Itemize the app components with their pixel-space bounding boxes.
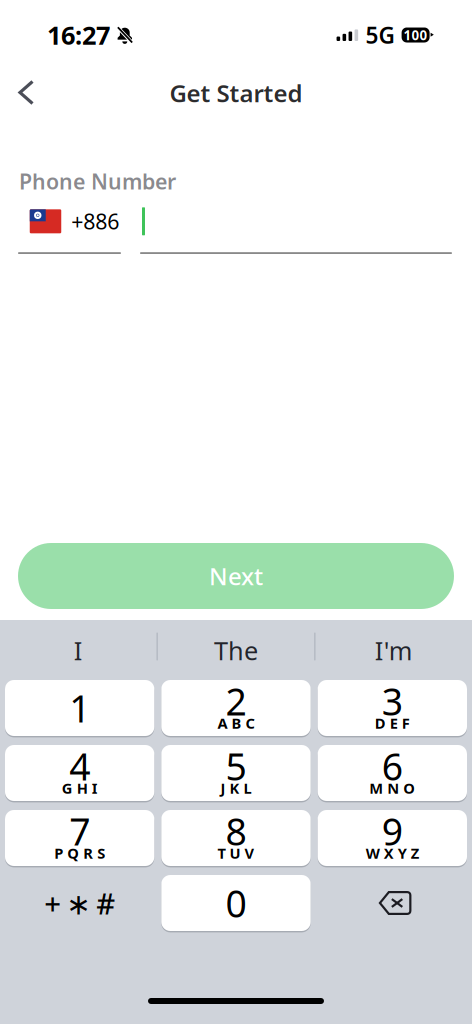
staticText: 1 xyxy=(69,683,90,733)
staticText: G H I xyxy=(62,778,98,798)
staticText: + ∗ # xyxy=(44,883,115,922)
button[interactable]: Next xyxy=(0,543,472,609)
staticText: 100 xyxy=(404,26,428,44)
button[interactable]: 7 xyxy=(5,810,154,866)
staticText: Get Started xyxy=(169,77,302,109)
staticText: 5 xyxy=(225,741,246,791)
button[interactable]: +886 xyxy=(18,206,121,254)
staticText: 8 xyxy=(225,806,246,856)
button[interactable]: 4 xyxy=(5,745,154,801)
staticText: W X Y Z xyxy=(366,843,419,863)
staticText: 16:27 xyxy=(47,18,110,52)
staticText: 0 xyxy=(225,878,246,928)
button[interactable]: 5 xyxy=(161,745,311,801)
staticText: 9 xyxy=(382,806,403,856)
staticText: Phone Number xyxy=(19,167,176,195)
staticText: I'm xyxy=(375,634,413,667)
staticText: 4 xyxy=(69,741,90,791)
button[interactable]: 8 xyxy=(161,810,311,866)
button[interactable]: Symbols xyxy=(5,875,154,931)
staticText: The xyxy=(214,634,258,667)
staticText: 6 xyxy=(382,741,403,791)
button[interactable]: Delete xyxy=(318,875,467,931)
button[interactable]: 2 xyxy=(161,680,311,736)
staticText: D E F xyxy=(375,713,410,733)
button[interactable]: 0 xyxy=(161,875,311,931)
button[interactable]: The xyxy=(158,620,314,673)
staticText: Next xyxy=(209,560,263,592)
staticText: 7 xyxy=(69,806,90,856)
staticText: P Q R S xyxy=(54,843,105,863)
staticText: J K L xyxy=(220,778,251,798)
button[interactable]: 6 xyxy=(318,745,467,801)
staticText: I xyxy=(74,634,83,667)
button[interactable]: I xyxy=(0,620,156,673)
staticText: A B C xyxy=(217,713,254,733)
button[interactable]: 3 xyxy=(318,680,467,736)
staticText: 5G xyxy=(366,20,395,50)
button[interactable]: 1 xyxy=(5,680,154,736)
staticText: 2 xyxy=(225,676,246,726)
staticText: 3 xyxy=(382,676,403,726)
button[interactable]: Back xyxy=(6,71,48,115)
button[interactable]: 9 xyxy=(318,810,467,866)
button[interactable]: I'm xyxy=(315,620,472,673)
staticText: M N O xyxy=(369,778,415,798)
staticText: T U V xyxy=(217,843,254,863)
staticText: +886 xyxy=(71,207,119,235)
